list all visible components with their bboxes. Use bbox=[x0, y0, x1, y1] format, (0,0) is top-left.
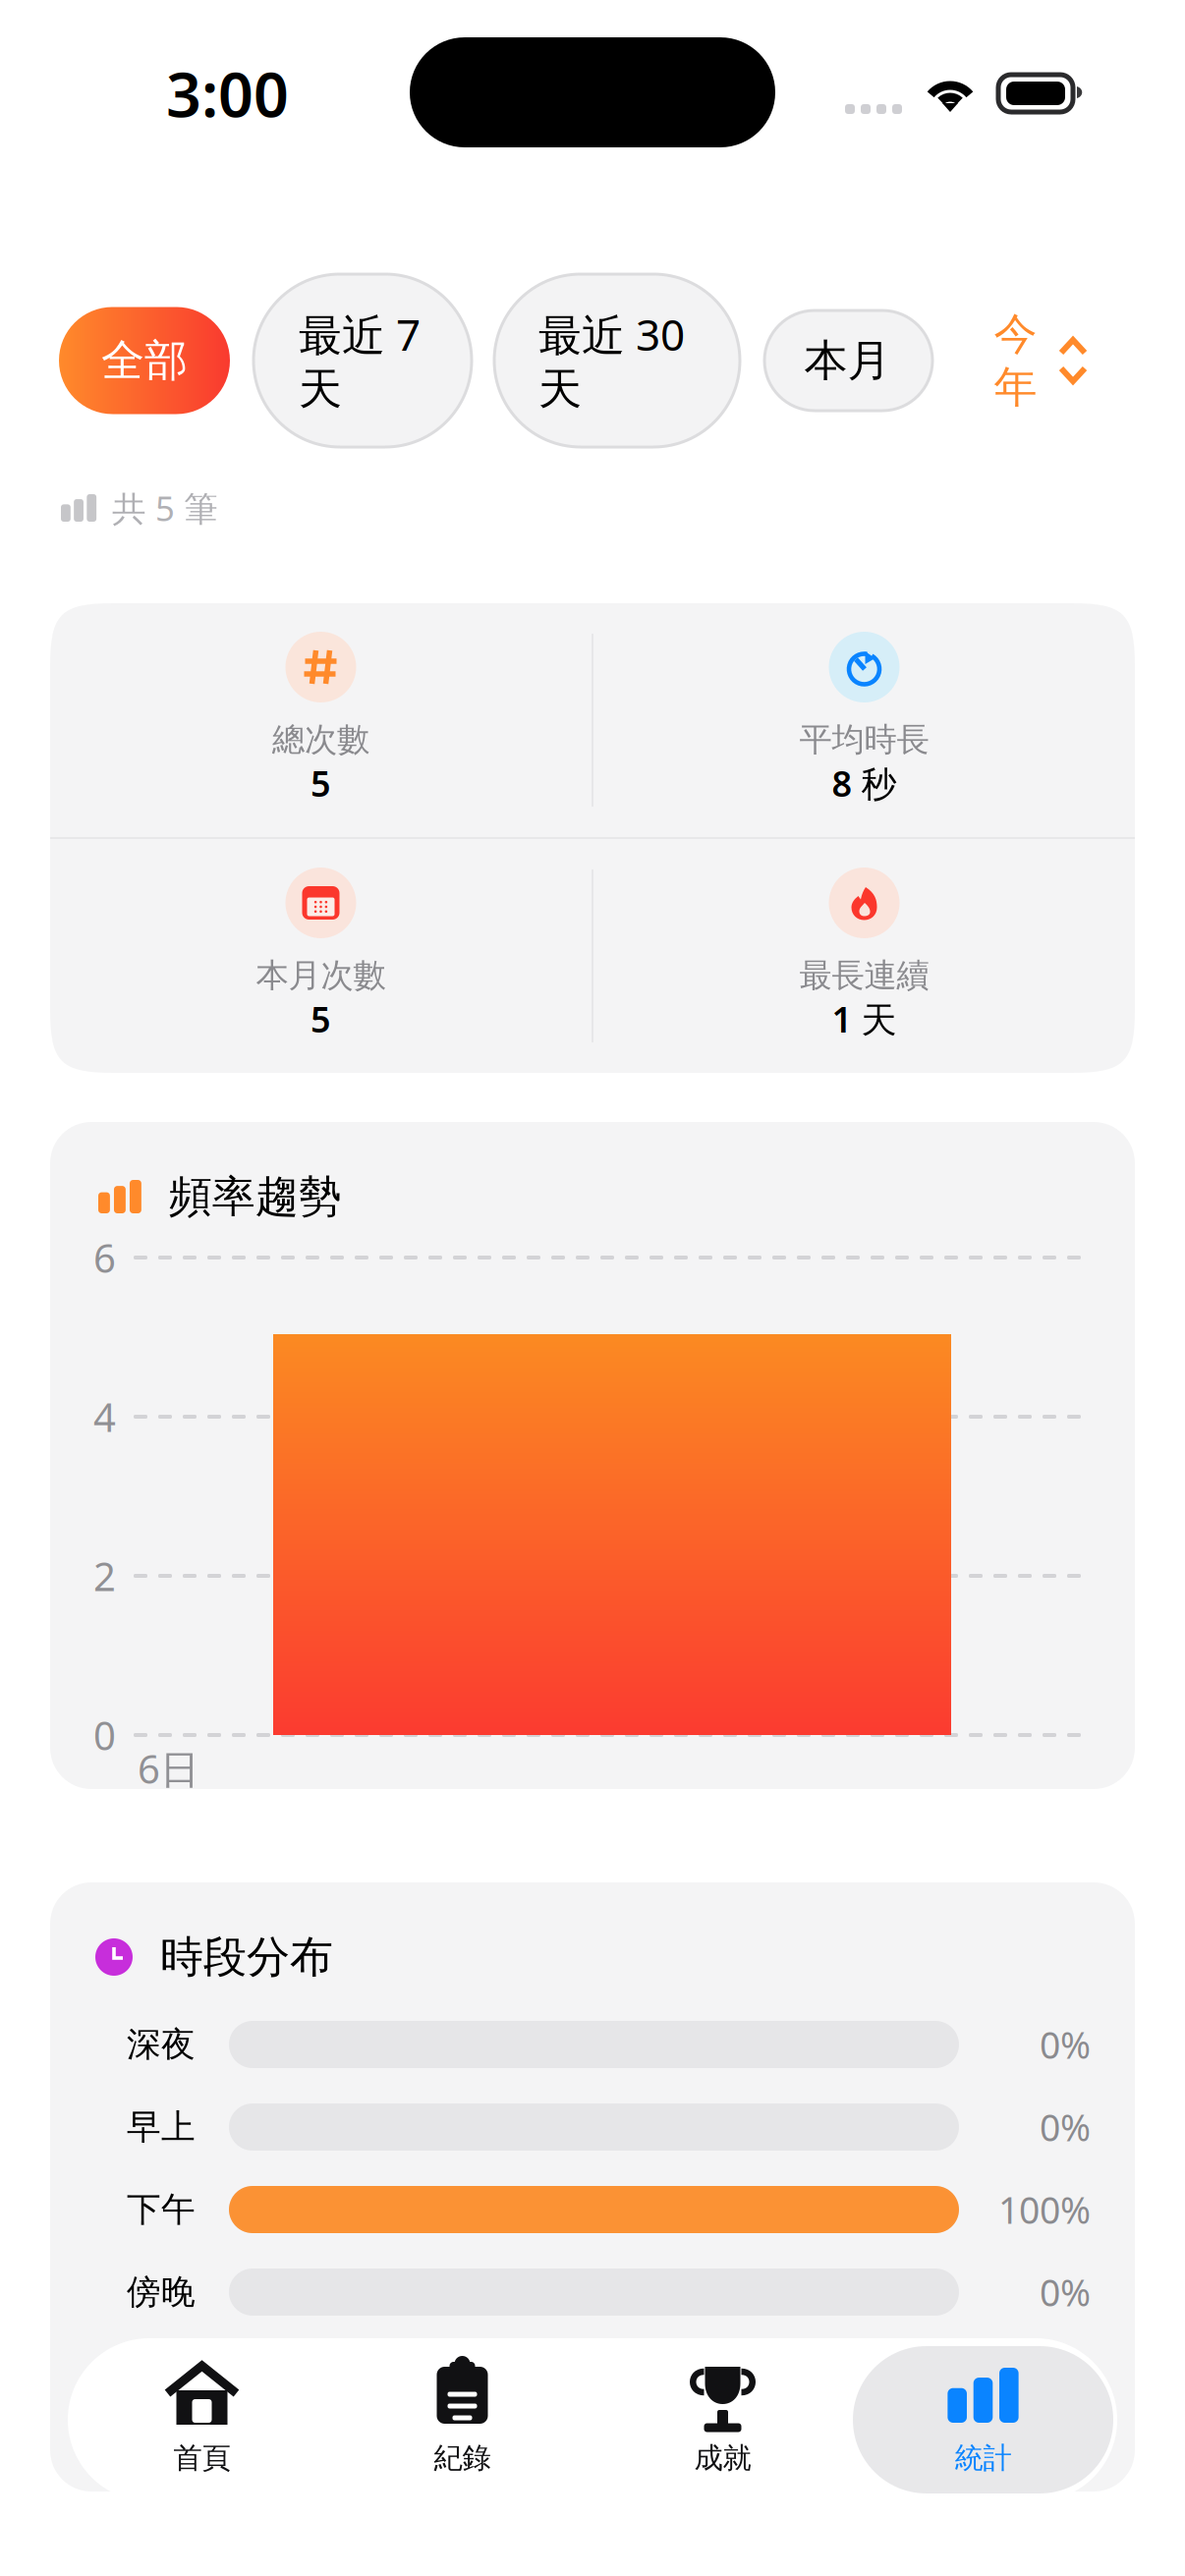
staticText: 0% bbox=[1040, 2103, 1091, 2151]
staticText: 6 bbox=[93, 1231, 116, 1284]
staticText: 年 bbox=[994, 361, 1037, 414]
staticText: 全部 bbox=[101, 334, 188, 387]
button[interactable]: 最近 7 天 bbox=[254, 274, 472, 447]
staticText: 最長連續 bbox=[799, 955, 929, 996]
staticText: 6日 bbox=[138, 1742, 199, 1794]
staticText: 0 bbox=[93, 1709, 116, 1761]
staticText: 紀錄 bbox=[434, 2440, 491, 2476]
button[interactable]: 紀錄 bbox=[332, 2346, 592, 2493]
button[interactable]: 今 bbox=[993, 309, 1088, 412]
staticText: 深夜 bbox=[127, 2024, 196, 2065]
staticText: 頻率趨勢 bbox=[169, 1170, 342, 1223]
staticText: 成就 bbox=[694, 2440, 751, 2476]
button[interactable]: 本月 bbox=[764, 310, 932, 411]
staticText: 時段分布 bbox=[160, 1931, 333, 1984]
staticText: 0% bbox=[1040, 2268, 1091, 2316]
staticText: 總次數 bbox=[272, 720, 369, 760]
button[interactable]: 首頁 bbox=[72, 2346, 332, 2493]
staticText: 平均時長 bbox=[799, 720, 929, 760]
staticText: 8 秒 bbox=[832, 760, 897, 806]
staticText: 下午 bbox=[127, 2189, 196, 2230]
staticText: 本月 bbox=[804, 334, 891, 387]
staticText: 本月次數 bbox=[256, 955, 386, 996]
staticText: 傍晚 bbox=[127, 2271, 196, 2313]
staticText: 統計 bbox=[955, 2440, 1012, 2476]
staticText: 共 5 筆 bbox=[112, 485, 218, 531]
staticText: 0% bbox=[1040, 2020, 1091, 2069]
staticText: 最近 7 天 bbox=[299, 305, 421, 416]
staticText: 5 bbox=[310, 995, 331, 1042]
staticText: 4 bbox=[93, 1391, 116, 1443]
staticText: 2 bbox=[93, 1550, 116, 1602]
staticText: 首頁 bbox=[173, 2440, 230, 2476]
button[interactable]: 統計 bbox=[853, 2346, 1113, 2493]
staticText: 早上 bbox=[127, 2106, 196, 2148]
staticText: 5 bbox=[310, 760, 331, 806]
button[interactable]: 最近 30 天 bbox=[494, 274, 740, 447]
button[interactable]: 全部 bbox=[59, 307, 230, 414]
staticText: 100% bbox=[998, 2185, 1091, 2234]
button[interactable]: 成就 bbox=[592, 2346, 853, 2493]
staticText: 最近 30 天 bbox=[538, 305, 685, 416]
staticText: 3:00 bbox=[166, 52, 289, 134]
staticText: 今 bbox=[994, 308, 1037, 361]
staticText: 1 天 bbox=[832, 995, 897, 1042]
